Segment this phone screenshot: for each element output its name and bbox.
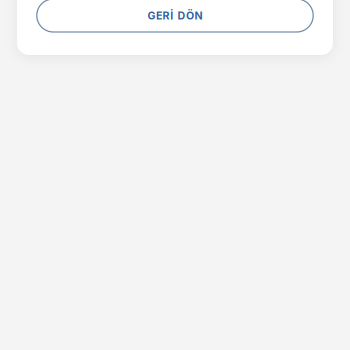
button[interactable]: GERİ DÖN — [37, 0, 313, 32]
staticText: GERİ DÖN — [147, 9, 203, 22]
